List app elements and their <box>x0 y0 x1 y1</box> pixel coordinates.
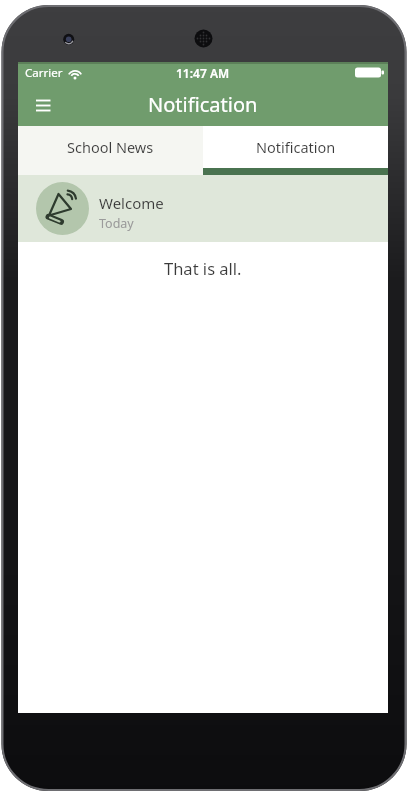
staticText: Notification <box>256 137 336 157</box>
staticText: That is all. <box>164 257 242 279</box>
button[interactable] <box>30 92 56 118</box>
staticText: Today <box>99 215 134 232</box>
button[interactable]: Notification <box>203 126 388 175</box>
button[interactable]: School News <box>18 126 203 175</box>
staticText: Notification <box>148 91 258 118</box>
staticText: Welcome <box>99 193 164 213</box>
staticText: School News <box>67 137 154 157</box>
staticText: Carrier <box>25 65 63 81</box>
staticText: 11:47 AM <box>176 65 230 81</box>
button[interactable]: Welcome <box>18 175 388 242</box>
